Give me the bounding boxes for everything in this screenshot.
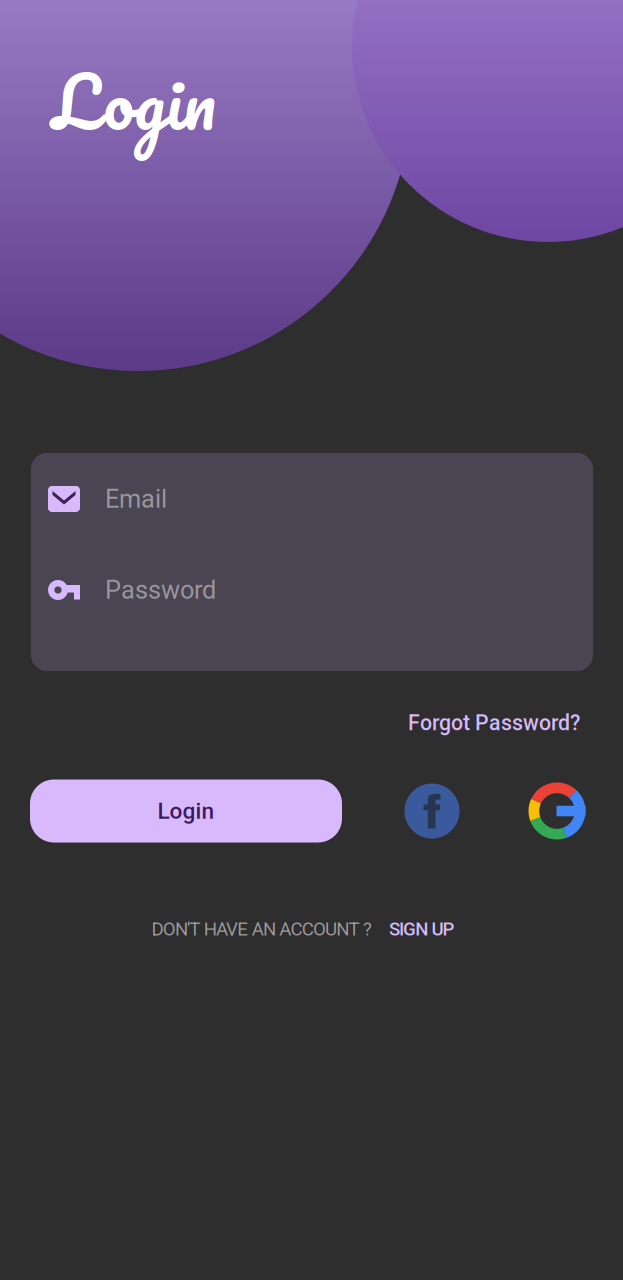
staticText: Login xyxy=(52,41,216,161)
button[interactable]: Continue with Google xyxy=(528,782,585,839)
staticText: SIGN UP xyxy=(389,918,454,940)
staticText: Forgot Password? xyxy=(408,710,580,735)
button[interactable]: Forgot Password? xyxy=(360,706,580,740)
staticText: Email xyxy=(105,484,167,514)
button[interactable]: Continue with Facebook xyxy=(404,783,459,838)
button[interactable]: SIGN UP xyxy=(372,918,454,940)
staticText: Password xyxy=(105,575,216,605)
staticText: Login xyxy=(157,798,214,824)
staticText: DON'T HAVE AN ACCOUNT ? xyxy=(151,918,372,940)
button[interactable]: Login xyxy=(30,779,342,842)
